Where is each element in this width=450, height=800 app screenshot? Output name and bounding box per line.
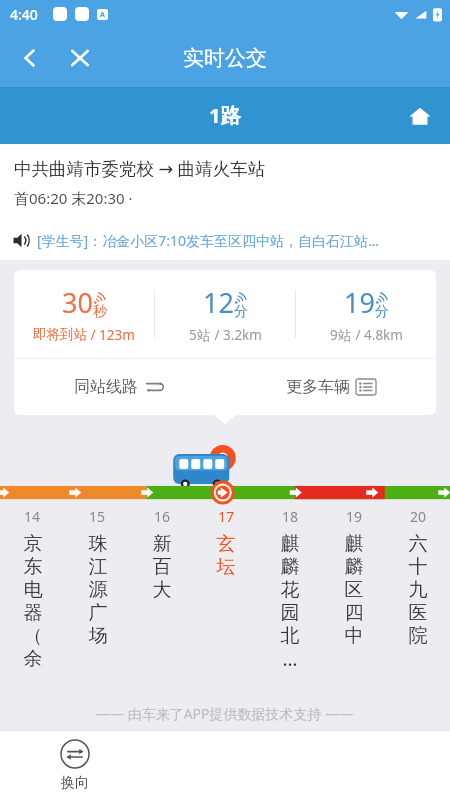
button[interactable]: 20 bbox=[386, 507, 450, 757]
staticText: 5站 bbox=[189, 326, 211, 344]
staticText: 同站线路 bbox=[74, 377, 138, 397]
staticText: 六十九医院 bbox=[405, 532, 431, 648]
staticText: 4:40 bbox=[10, 5, 38, 24]
button[interactable]: [学生号]：冶金小区7:10发车至区四中站，自白石江站… bbox=[0, 220, 450, 260]
staticText: 实时公交 bbox=[183, 45, 267, 71]
staticText: / 123m bbox=[87, 326, 135, 344]
staticText: 秒 bbox=[93, 303, 107, 321]
button[interactable]: 19 bbox=[296, 270, 436, 358]
staticText: 玄坛 bbox=[213, 532, 239, 579]
staticText: 20 bbox=[410, 507, 427, 526]
button[interactable]: 更多车辆 bbox=[225, 359, 436, 415]
button[interactable]: 16 bbox=[130, 507, 194, 757]
staticText: 15 bbox=[89, 507, 106, 526]
button[interactable]: Back bbox=[8, 36, 52, 80]
staticText: 19 bbox=[346, 507, 363, 526]
staticText: 14 bbox=[24, 507, 41, 526]
button[interactable]: 18 bbox=[258, 507, 322, 757]
button[interactable]: 同站线路 bbox=[14, 359, 225, 415]
staticText: 18 bbox=[282, 507, 299, 526]
staticText: 麒麟区四中 bbox=[341, 532, 367, 648]
staticText: A bbox=[100, 10, 105, 20]
button[interactable]: 30 bbox=[14, 270, 154, 358]
button[interactable]: 12 bbox=[155, 270, 295, 358]
staticText: 30 bbox=[62, 284, 93, 321]
staticText: 更多车辆 bbox=[286, 377, 350, 397]
staticText: 9站 bbox=[330, 326, 352, 344]
staticText: —— 由车来了APP提供数据技术支持 —— bbox=[96, 704, 354, 723]
staticText: 中共曲靖市委党校 → 曲靖火车站 bbox=[14, 156, 266, 180]
staticText: 17 bbox=[218, 507, 235, 526]
button[interactable]: Close bbox=[58, 36, 102, 80]
staticText: 1路 bbox=[209, 102, 241, 129]
staticText: 12 bbox=[203, 284, 234, 321]
staticText: 19 bbox=[344, 284, 375, 321]
button[interactable]: Home bbox=[398, 94, 442, 138]
staticText: 新百大 bbox=[149, 532, 175, 602]
button[interactable]: 14 bbox=[0, 507, 65, 757]
button[interactable]: 17 bbox=[194, 507, 258, 757]
staticText: [学生号]：冶金小区7:10发车至区四中站，自白石江站… bbox=[37, 231, 380, 250]
staticText: 京东电器（余 bbox=[20, 532, 46, 671]
staticText: 16 bbox=[154, 507, 171, 526]
button[interactable]: 换向 bbox=[0, 730, 150, 800]
staticText: 分 bbox=[375, 303, 389, 321]
staticText: 即将到站 bbox=[33, 326, 87, 343]
staticText: / 4.8km bbox=[352, 326, 403, 344]
staticText: 麒麟花园北… bbox=[277, 532, 303, 672]
staticText: 珠江源广场 bbox=[85, 532, 111, 648]
staticText: / 3.2km bbox=[211, 326, 262, 344]
staticText: 换向 bbox=[61, 774, 89, 792]
staticText: 分 bbox=[234, 303, 248, 321]
button[interactable]: 15 bbox=[65, 507, 130, 757]
button[interactable]: 19 bbox=[322, 507, 386, 757]
staticText: 首06:20 末20:30 · bbox=[14, 188, 133, 208]
